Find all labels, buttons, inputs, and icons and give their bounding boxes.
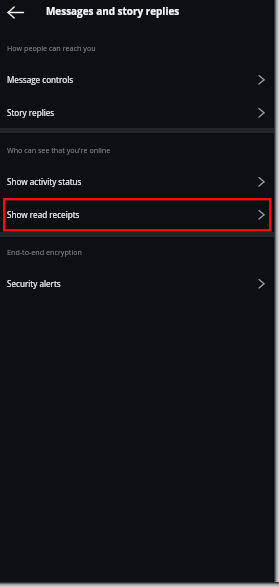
staticText: How people can reach you — [7, 43, 96, 53]
staticText: Show activity status — [7, 176, 256, 187]
button[interactable]: Security alerts — [0, 267, 274, 300]
staticText: Who can see that you're online — [7, 145, 111, 155]
staticText: Security alerts — [7, 278, 256, 289]
staticText: Show read receipts — [7, 209, 256, 220]
button[interactable]: Show read receipts — [0, 198, 274, 231]
staticText: End-to-end encryption — [7, 247, 82, 257]
button[interactable]: Show activity status — [0, 165, 274, 198]
staticText: Messages and story replies — [46, 4, 180, 18]
staticText: Message controls — [7, 74, 256, 85]
button[interactable]: Back — [3, 0, 27, 24]
button[interactable]: Message controls — [0, 63, 274, 96]
button[interactable]: Story replies — [0, 96, 274, 129]
staticText: Story replies — [7, 107, 256, 118]
